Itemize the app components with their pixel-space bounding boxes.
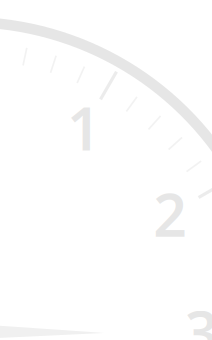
staticText: 1	[67, 89, 101, 167]
staticText: 2	[153, 175, 187, 253]
staticText: 3	[185, 292, 212, 340]
